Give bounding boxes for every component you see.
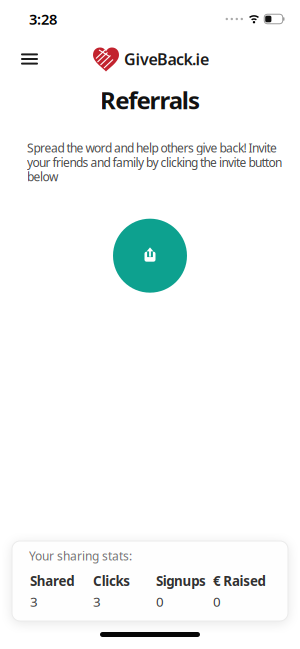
button[interactable]: Menu [15, 47, 43, 71]
staticText: 3 [93, 593, 101, 610]
staticText: Signups [156, 572, 206, 590]
staticText: 0 [156, 593, 164, 610]
staticText: 3:28 [29, 9, 57, 29]
staticText: Clicks [93, 572, 130, 590]
staticText: € Raised [213, 572, 266, 590]
staticText: Shared [30, 572, 74, 590]
staticText: Your sharing stats: [29, 548, 132, 564]
staticText: Referrals [100, 84, 200, 116]
staticText: 0 [213, 593, 221, 610]
button[interactable]: Invite [113, 219, 187, 293]
staticText: 3 [30, 593, 38, 610]
staticText: Spread the word and help others give bac… [27, 140, 282, 185]
staticText: GiveBack.ie [124, 48, 209, 70]
